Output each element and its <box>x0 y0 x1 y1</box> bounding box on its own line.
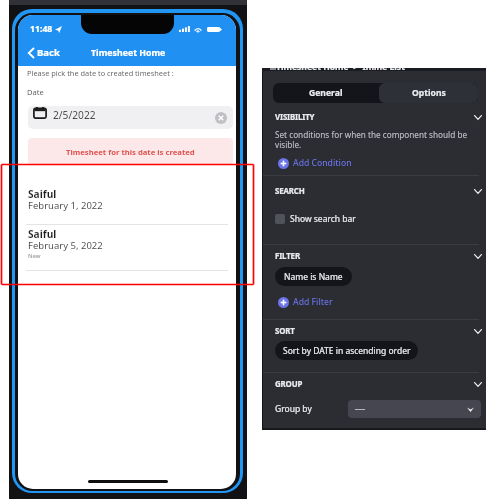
button[interactable]: Clear date <box>215 112 227 124</box>
button[interactable]: Sort by DATE in ascending order <box>275 341 418 360</box>
staticText: General <box>309 87 343 99</box>
staticText: Add Condition <box>293 157 352 169</box>
staticText: Timesheet Home > Inline List <box>276 68 405 71</box>
staticText: GROUP <box>275 379 303 390</box>
button[interactable]: Saiful <box>26 181 228 224</box>
staticText: Timesheet Home <box>91 47 166 59</box>
button[interactable] <box>348 400 481 418</box>
staticText: February 5, 2022 <box>28 239 103 252</box>
staticText: New <box>28 252 41 260</box>
button[interactable]: Name is Name <box>275 267 352 286</box>
button[interactable]: Add Filter <box>276 295 335 309</box>
button[interactable]: Add Condition <box>276 156 354 170</box>
button[interactable]: GROUP <box>262 377 486 391</box>
staticText: SEARCH <box>275 186 305 197</box>
staticText: Saiful <box>28 227 57 241</box>
staticText: Name is Name <box>284 271 343 283</box>
button[interactable]: Show search bar <box>275 212 356 226</box>
button[interactable]: Options <box>379 83 478 103</box>
staticText: VISIBILITY <box>275 112 315 123</box>
button[interactable]: Back <box>25 44 63 61</box>
button[interactable]: General <box>273 83 379 103</box>
staticText: Add Filter <box>293 296 333 308</box>
staticText: Options <box>412 87 446 99</box>
button[interactable]: VISIBILITY <box>262 110 486 124</box>
staticText: Date <box>27 87 44 97</box>
staticText: Please pick the date to created timeshee… <box>27 68 174 78</box>
staticText: Timesheet for this date is created <box>66 147 195 157</box>
button[interactable]: Saiful <box>26 225 228 270</box>
staticText: February 1, 2022 <box>28 199 103 212</box>
staticText: SORT <box>275 326 295 337</box>
staticText: Sort by DATE in ascending order <box>283 345 411 357</box>
staticText: 2/5/2022 <box>53 108 96 122</box>
staticText: Set conditions for when the component sh… <box>275 129 468 151</box>
staticText: Group by <box>275 403 312 415</box>
button[interactable]: SORT <box>262 324 486 338</box>
staticText: Saiful <box>28 187 57 201</box>
staticText: Back <box>37 46 60 59</box>
button[interactable]: 2/5/2022 <box>28 106 233 129</box>
staticText: FILTER <box>275 251 300 262</box>
button[interactable]: SEARCH <box>262 184 486 198</box>
staticText: Show search bar <box>290 213 356 225</box>
button[interactable]: FILTER <box>262 249 486 263</box>
staticText: 11:48 <box>30 23 53 35</box>
